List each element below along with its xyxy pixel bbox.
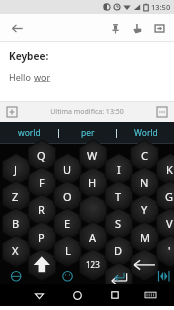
button[interactable]: Add [4, 104, 20, 120]
staticText: O [63, 189, 72, 204]
staticText: ' [168, 243, 171, 258]
staticText: F [39, 175, 45, 190]
button[interactable]: More options [154, 104, 170, 120]
staticText: Hello [9, 71, 34, 83]
button[interactable]: K [158, 158, 174, 181]
button[interactable]: F [30, 171, 53, 194]
staticText: X [12, 243, 19, 258]
button[interactable]: I [107, 158, 130, 181]
staticText: R [38, 202, 45, 217]
button[interactable]: L [56, 239, 79, 262]
button[interactable]: Reminder [126, 17, 148, 39]
button[interactable]: N [133, 171, 156, 194]
button[interactable]: ' [158, 239, 174, 262]
staticText: P [38, 230, 45, 245]
staticText: U [63, 162, 72, 177]
button[interactable]: Key [81, 198, 104, 221]
button[interactable]: O [56, 185, 79, 208]
button[interactable]: A [81, 226, 104, 249]
staticText: W [87, 148, 98, 163]
staticText: 123 [86, 259, 100, 270]
button[interactable]: Shift [30, 253, 53, 276]
button[interactable]: Backspace [133, 253, 156, 276]
button[interactable]: D [107, 239, 130, 262]
staticText: L [65, 243, 71, 258]
staticText: A [89, 230, 97, 245]
button[interactable]: Pin [104, 17, 126, 39]
staticText: wor [34, 71, 51, 83]
staticText: K [166, 162, 173, 177]
staticText: 13:50 [151, 2, 171, 12]
button[interactable]: Back [20, 284, 58, 306]
staticText: B [12, 216, 20, 231]
staticText: World [134, 127, 158, 139]
button[interactable]: P [30, 226, 53, 249]
staticText: J [14, 162, 18, 177]
button[interactable]: Y [133, 198, 156, 221]
button[interactable]: V [158, 212, 174, 235]
button[interactable]: per [59, 122, 116, 144]
button[interactable]: Home [58, 284, 96, 306]
staticText: per [81, 127, 95, 139]
staticText: G [165, 189, 174, 204]
staticText: C [141, 148, 148, 163]
staticText: V [166, 216, 173, 231]
staticText: H [88, 175, 97, 190]
button[interactable]: G [158, 185, 174, 208]
button[interactable]: Recents [96, 284, 134, 306]
staticText: I [117, 162, 121, 177]
button[interactable]: R [30, 198, 53, 221]
button[interactable]: Q [30, 144, 53, 167]
button[interactable]: world [0, 122, 58, 144]
staticText: T [115, 189, 122, 204]
button[interactable]: H [81, 171, 104, 194]
button[interactable]: 123 [81, 253, 104, 276]
staticText: Q [37, 148, 46, 163]
button[interactable]: Switch keyboard [134, 284, 166, 306]
staticText: D [114, 243, 123, 258]
button[interactable]: T [107, 185, 130, 208]
button[interactable]: Archive [148, 17, 170, 39]
button[interactable]: E [56, 212, 79, 235]
button[interactable]: Enter [107, 267, 130, 290]
staticText: world [18, 127, 41, 139]
staticText: N [140, 175, 149, 190]
button[interactable]: J [4, 158, 27, 181]
staticText: Z [12, 189, 19, 204]
button[interactable]: C [133, 144, 156, 167]
button[interactable]: World [117, 122, 174, 144]
staticText: M [140, 230, 150, 245]
staticText: S [115, 216, 122, 231]
button[interactable]: M [133, 226, 156, 249]
button[interactable]: B [4, 212, 27, 235]
button[interactable]: Z [4, 185, 27, 208]
button[interactable]: S [107, 212, 130, 235]
staticText: Keybee: [9, 49, 49, 63]
button[interactable]: X [4, 239, 27, 262]
button[interactable]: U [56, 158, 79, 181]
staticText: Ultima modifica: 13:50 [50, 107, 124, 117]
button[interactable]: Back [6, 17, 28, 39]
staticText: E [64, 216, 71, 231]
button[interactable]: W [81, 144, 104, 167]
staticText: Y [141, 202, 148, 217]
